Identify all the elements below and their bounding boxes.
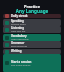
button[interactable]: Vocabulary (3, 34, 61, 41)
staticText: Listening (11, 26, 24, 30)
staticText: Pick a topic and go (11, 64, 31, 67)
staticText: Train your ear (11, 30, 26, 33)
button[interactable]: Grammar (3, 41, 61, 48)
staticText: Practice (0, 4, 64, 9)
button[interactable]: Daily streak (3, 14, 61, 18)
staticText: Daily streak (11, 14, 28, 18)
staticText: Start a session (11, 60, 32, 64)
staticText: Writing (11, 49, 22, 53)
button[interactable]: Writing (3, 49, 61, 54)
staticText: Grammar (11, 41, 25, 45)
button[interactable]: Start a session (3, 54, 61, 72)
staticText: Practice aloud (11, 23, 26, 26)
staticText: Vocabulary (11, 34, 27, 38)
staticText: Speaking (11, 19, 24, 23)
staticText: Build sentences (11, 45, 28, 48)
staticText: Any Language (0, 8, 64, 14)
staticText: Learn new words (11, 38, 29, 41)
button[interactable]: Speaking (3, 19, 61, 26)
button[interactable]: Listening (3, 26, 61, 33)
